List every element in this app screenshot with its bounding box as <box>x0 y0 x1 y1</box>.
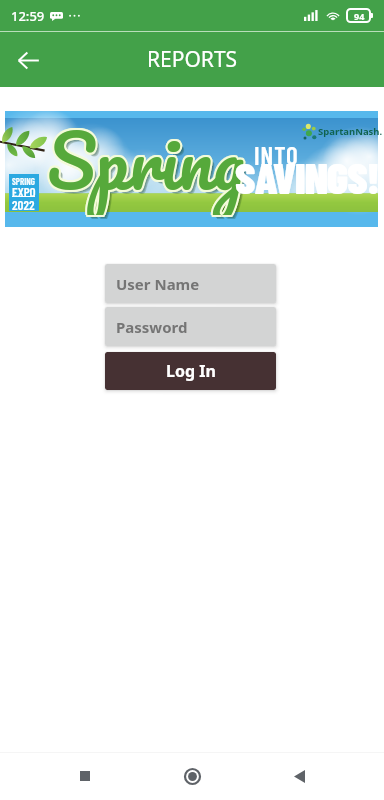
staticText: Spring <box>48 101 246 217</box>
staticText: EXPO <box>12 184 36 200</box>
staticText: Password <box>116 317 188 337</box>
staticText: Spring <box>45 99 243 215</box>
staticText: Spring <box>48 97 246 213</box>
staticText: 12:59 <box>11 7 45 25</box>
staticText: Spring <box>50 102 248 218</box>
staticText: INTO <box>254 140 299 170</box>
button[interactable]: Back <box>277 754 321 798</box>
button[interactable]: Log In <box>105 352 276 390</box>
staticText: Log In <box>166 360 216 382</box>
staticText: SAVINGS! <box>235 150 379 203</box>
staticText: Spring <box>51 103 249 219</box>
button[interactable]: Password <box>105 307 276 346</box>
staticText: 94 <box>354 10 365 22</box>
staticText: Spring <box>46 98 244 214</box>
staticText: REPORTS <box>147 45 238 74</box>
staticText: 2022 <box>12 197 35 213</box>
button[interactable]: Back <box>8 40 48 80</box>
button[interactable]: Recents <box>63 754 107 798</box>
button[interactable]: Home <box>170 754 214 798</box>
staticText: Spring <box>48 98 246 214</box>
staticText: Spring <box>48 100 246 216</box>
staticText: SPRING <box>12 176 35 187</box>
staticText: Spring <box>46 101 244 217</box>
staticText: Spring <box>46 97 244 213</box>
staticText: Spring <box>46 100 244 216</box>
staticText: User Name <box>116 274 200 294</box>
staticText: SpartanNash. <box>318 125 383 138</box>
staticText: Spring <box>49 99 247 215</box>
staticText: Spring <box>47 99 245 215</box>
button[interactable]: User Name <box>105 264 276 303</box>
